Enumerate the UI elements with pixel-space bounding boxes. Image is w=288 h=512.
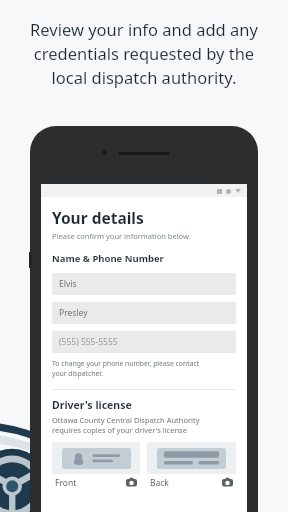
button[interactable]: Elvis — [52, 273, 236, 295]
button[interactable]: Front — [52, 442, 140, 491]
staticText: Driver's license — [52, 398, 132, 412]
other: Take photo of Back — [222, 477, 233, 488]
staticText: Front — [55, 477, 77, 489]
staticText: Ottawa County Central Dispatch Authority… — [52, 415, 200, 435]
staticText: Elvis — [59, 278, 77, 290]
staticText: Review your info and add any credentials… — [14, 18, 274, 89]
staticText: To change your phone number, please cont… — [52, 359, 200, 378]
staticText: Back — [150, 477, 169, 489]
staticText: Presley — [59, 307, 88, 319]
staticText: (555) 555-5555 — [59, 336, 118, 348]
other: Take photo of Front — [126, 477, 137, 488]
staticText: Your details — [52, 207, 144, 228]
button[interactable]: (555) 555-5555 — [52, 331, 236, 353]
button[interactable]: Back — [147, 442, 236, 491]
button[interactable]: Presley — [52, 302, 236, 324]
staticText: Please confirm your information below. — [52, 231, 191, 241]
staticText: Name & Phone Number — [52, 252, 164, 265]
